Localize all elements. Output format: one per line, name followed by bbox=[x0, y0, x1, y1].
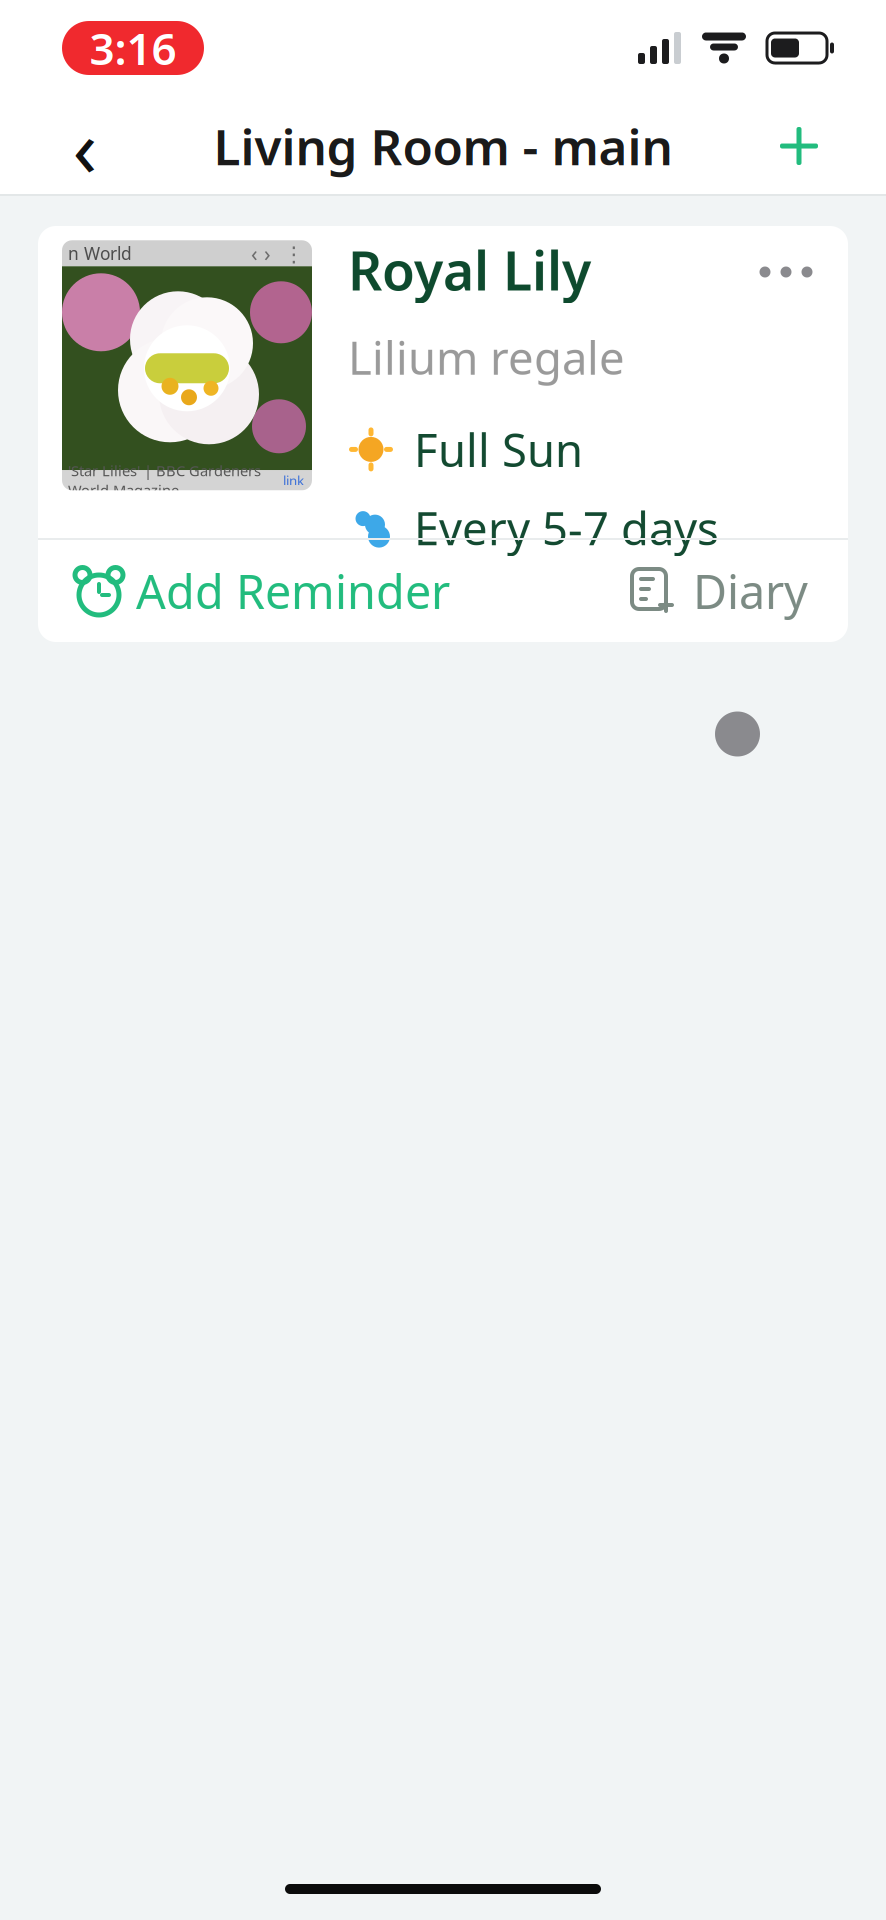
staticText: Full Sun bbox=[414, 419, 583, 479]
staticText: Royal Lily bbox=[348, 234, 591, 305]
button[interactable]: Back bbox=[42, 103, 128, 189]
staticText: Add Reminder bbox=[136, 560, 450, 622]
staticText: Living Room - main bbox=[213, 113, 672, 179]
button[interactable]: Add Reminder bbox=[38, 534, 450, 648]
staticText: link bbox=[283, 471, 304, 489]
staticText: ‹ › ⋮ bbox=[251, 239, 304, 267]
button[interactable]: Diary bbox=[627, 534, 848, 648]
staticText: Lilium regale bbox=[348, 327, 625, 387]
staticText: Diary bbox=[693, 560, 808, 622]
staticText: Every 5-7 days bbox=[414, 497, 719, 558]
staticText: n World bbox=[68, 242, 132, 265]
staticText: 3:16 bbox=[89, 19, 176, 77]
button[interactable]: Add plant bbox=[756, 103, 842, 189]
staticText: 'Star Lilies' | BBC Gardeners World Maga… bbox=[68, 461, 261, 500]
button[interactable]: More options bbox=[740, 240, 832, 304]
staticText: ‹ bbox=[72, 93, 97, 199]
